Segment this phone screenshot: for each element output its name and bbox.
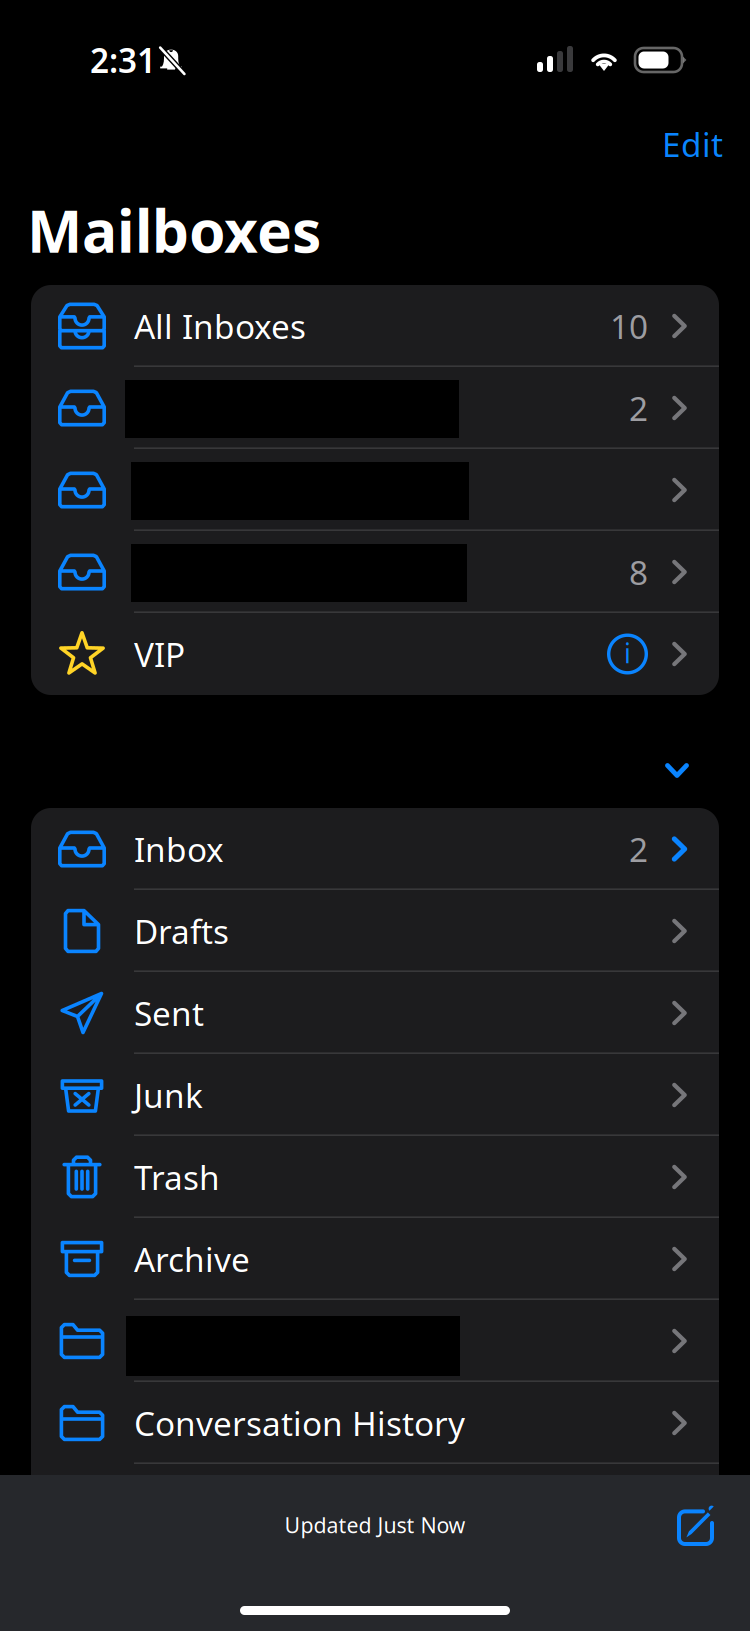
staticText: Sent [134, 991, 204, 1035]
button[interactable]: Edit [648, 112, 737, 176]
staticText: 2 [629, 827, 648, 871]
button[interactable]: 8 [31, 531, 719, 613]
staticText: Conversation History [134, 1401, 465, 1445]
staticText: Drafts [134, 909, 229, 953]
button[interactable] [31, 1300, 719, 1382]
staticText: Archive [134, 1237, 250, 1281]
staticText: VIP [134, 632, 185, 676]
staticText: Updated Just Now [284, 1511, 465, 1539]
staticText: i [624, 635, 631, 671]
button[interactable] [31, 449, 719, 531]
staticText: Mailboxes [27, 191, 321, 269]
staticText: Edit [662, 122, 723, 166]
button[interactable]: Drafts [31, 890, 719, 972]
button[interactable]: Compose [677, 1504, 718, 1546]
button[interactable]: Sent [31, 972, 719, 1054]
button[interactable]: Junk [31, 1054, 719, 1136]
staticText: 2 [629, 386, 648, 430]
staticText: 2:31 [90, 38, 156, 82]
staticText: Inbox [134, 827, 224, 871]
staticText: 10 [610, 304, 648, 348]
staticText: 8 [629, 550, 648, 594]
button[interactable]: Conversation History [31, 1382, 719, 1464]
staticText: Trash [134, 1155, 220, 1199]
button[interactable]: Inbox [31, 808, 719, 890]
button[interactable]: VIP [31, 613, 719, 695]
staticText: Junk [134, 1073, 203, 1117]
button[interactable]: Trash [31, 1136, 719, 1218]
button[interactable]: All Inboxes [31, 285, 719, 367]
button[interactable]: Archive [31, 1218, 719, 1300]
button[interactable]: Notes [31, 1464, 719, 1546]
button[interactable]: 2 [31, 367, 719, 449]
staticText: All Inboxes [134, 304, 306, 348]
button[interactable]: Collapse accounts [645, 745, 709, 796]
